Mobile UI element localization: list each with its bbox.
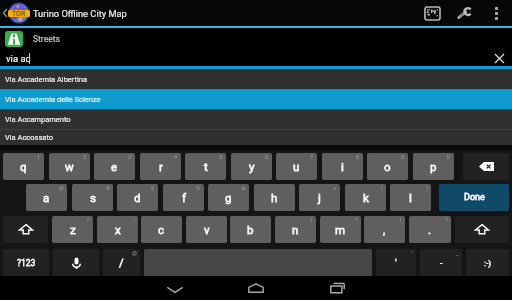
staticText: ?123 [17,258,36,268]
button[interactable]: m [320,216,361,243]
staticText: ! [400,217,402,223]
button[interactable]: Via Accampamento [0,109,512,129]
button[interactable]: Shift [455,216,509,243]
button[interactable]: :-) [466,249,509,277]
button[interactable]: k [345,184,386,211]
button[interactable]: Via Accademia Albertina [0,69,512,89]
staticText: 1 [37,154,41,160]
button[interactable]: Navigate up [0,2,9,24]
button[interactable]: v [186,216,227,243]
staticText: ! [311,217,313,223]
staticText: l [409,191,412,204]
staticText: h [271,191,278,204]
staticText: $ [151,185,155,191]
button[interactable]: Settings [451,1,477,25]
button[interactable]: x [97,216,138,243]
staticText: Via Accademia delle Scienze [5,95,101,104]
button[interactable]: Streets category [5,31,23,47]
staticText: / [119,257,124,270]
button[interactable]: Space [144,249,372,277]
button[interactable]: d [117,184,158,211]
staticText: ' [178,217,179,223]
button[interactable]: f [163,184,204,211]
button[interactable]: Voice input [53,249,99,277]
staticText: & [242,185,246,191]
staticText: 5 [219,154,223,160]
staticText: v [204,223,210,236]
staticText: ? [355,217,358,223]
button[interactable]: c [141,216,182,243]
button[interactable]: q [3,153,44,180]
staticText: # [106,185,110,191]
staticText: g [225,191,232,204]
button[interactable]: - [420,249,462,277]
staticText: . [428,223,432,236]
button[interactable]: ' [376,249,416,277]
button[interactable]: Hide keyboard [157,278,193,300]
button[interactable]: Show map [419,1,445,25]
staticText: ( [381,185,383,191]
staticText: TOR [12,10,26,17]
staticText: ; [266,217,268,223]
staticText: Streets [33,34,60,44]
button[interactable]: Via Accademia delle Scienze [0,89,512,109]
button[interactable]: Recent apps [319,276,355,300]
staticText: w [65,160,74,173]
button[interactable]: Done [439,184,509,211]
button[interactable]: y [231,153,272,180]
button[interactable]: h [254,184,295,211]
button[interactable]: j [299,184,340,211]
button[interactable]: Clear query [488,49,510,67]
staticText: - [440,258,443,269]
staticText: d [134,191,141,204]
staticText: ? [445,217,448,223]
staticText: - [290,185,292,191]
button[interactable]: g [208,184,249,211]
button[interactable]: l [390,184,431,211]
button[interactable]: e [94,153,135,180]
staticText: 4 [174,154,178,160]
button[interactable]: i [322,153,363,180]
staticText: j [318,191,321,204]
staticText: 9 [401,154,405,160]
staticText: x [115,223,121,236]
button[interactable]: p [413,153,454,180]
staticText: " [411,250,413,256]
staticText: p [430,160,437,173]
staticText: * [87,217,90,223]
button[interactable]: s [72,184,113,211]
button[interactable]: , [364,216,405,243]
staticText: 2 [83,154,87,160]
staticText: Turino Offline City Map [33,8,127,19]
staticText: ) [426,185,428,191]
button[interactable]: o [367,153,408,180]
staticText: n [292,223,299,236]
button[interactable]: / [103,249,140,277]
button[interactable]: Via Accossato [0,129,512,146]
button[interactable]: Home [238,276,274,300]
staticText: m [335,223,346,236]
staticText: a [43,191,50,204]
button[interactable]: ?123 [3,249,49,277]
button[interactable]: Delete [463,153,509,180]
button[interactable]: b [230,216,271,243]
staticText: i [341,160,344,173]
button[interactable]: a [26,184,67,211]
staticText: y [249,160,255,173]
button[interactable]: t [185,153,226,180]
button[interactable]: Shift [3,216,48,243]
staticText: % [196,185,201,191]
button[interactable]: . [409,216,451,243]
staticText: b [247,223,254,236]
button[interactable]: z [52,216,93,243]
staticText: @ [132,250,137,256]
button[interactable]: u [276,153,317,180]
button[interactable]: More options [484,1,508,25]
button[interactable]: w [49,153,90,180]
button[interactable]: n [275,216,316,243]
button[interactable]: r [140,153,181,180]
staticText: @ [59,185,64,191]
staticText: t [204,160,208,173]
staticText: ' [395,258,397,269]
staticText: s [90,191,96,204]
